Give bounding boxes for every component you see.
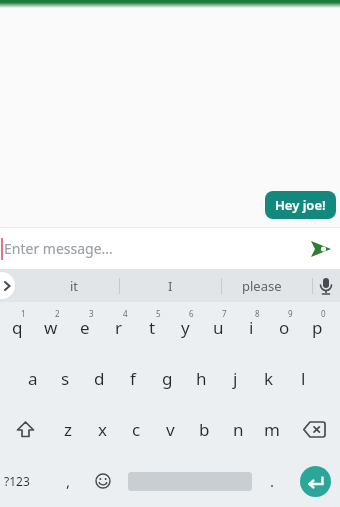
staticText: 1 xyxy=(21,308,26,319)
staticText: y xyxy=(181,316,190,339)
staticText: l xyxy=(301,367,306,390)
staticText: q xyxy=(12,316,23,339)
staticText: 9 xyxy=(288,308,293,319)
button[interactable]: x xyxy=(85,404,119,455)
staticText: v xyxy=(166,418,175,441)
button[interactable]: a xyxy=(16,353,49,404)
button[interactable]: y xyxy=(169,302,202,353)
button[interactable] xyxy=(300,466,331,497)
staticText: ?123 xyxy=(4,473,30,489)
staticText: u xyxy=(213,316,224,339)
staticText: p xyxy=(312,316,323,339)
staticText: i xyxy=(249,316,254,339)
button[interactable] xyxy=(0,272,15,299)
button[interactable] xyxy=(95,473,111,489)
staticText: 5 xyxy=(156,308,161,319)
button[interactable]: w xyxy=(34,302,68,353)
staticText: n xyxy=(233,418,244,441)
button[interactable]: m xyxy=(255,404,289,455)
staticText: 6 xyxy=(189,308,194,319)
button[interactable]: k xyxy=(252,353,286,404)
button[interactable]: t xyxy=(136,302,169,353)
staticText: 4 xyxy=(123,308,128,319)
staticText: o xyxy=(279,316,290,339)
staticText: r xyxy=(115,316,123,339)
button[interactable]: r xyxy=(102,302,136,353)
staticText: a xyxy=(28,367,38,390)
staticText: j xyxy=(233,367,238,390)
button[interactable]: I xyxy=(150,277,190,295)
staticText: h xyxy=(196,367,207,390)
button[interactable] xyxy=(0,404,51,455)
staticText: g xyxy=(162,367,173,390)
button[interactable]: z xyxy=(51,404,85,455)
staticText: please xyxy=(242,277,282,295)
staticText: 0 xyxy=(321,308,326,319)
staticText: c xyxy=(132,418,141,441)
staticText: m xyxy=(264,418,280,441)
button[interactable]: i xyxy=(235,302,268,353)
button[interactable]: v xyxy=(153,404,187,455)
button[interactable]: Hey joe! xyxy=(265,191,336,219)
staticText: , xyxy=(66,471,71,491)
staticText: Hey joe! xyxy=(275,196,326,214)
staticText: d xyxy=(94,367,105,390)
staticText: t xyxy=(149,316,156,339)
button[interactable] xyxy=(289,404,340,455)
button[interactable]: p xyxy=(301,302,334,353)
button[interactable]: please xyxy=(232,277,292,295)
staticText: Enter message... xyxy=(4,239,113,258)
staticText: it xyxy=(70,277,79,295)
staticText: k xyxy=(264,367,274,390)
button[interactable] xyxy=(318,277,334,295)
button[interactable]: g xyxy=(150,353,184,404)
staticText: 3 xyxy=(89,308,94,319)
button[interactable]: e xyxy=(68,302,102,353)
staticText: 7 xyxy=(222,308,227,319)
staticText: e xyxy=(80,316,90,339)
button[interactable]: q xyxy=(0,302,34,353)
staticText: z xyxy=(64,418,72,441)
button[interactable]: d xyxy=(82,353,116,404)
button[interactable]: Enter message... xyxy=(0,228,340,269)
staticText: I xyxy=(168,277,173,295)
button[interactable]: b xyxy=(187,404,221,455)
button[interactable]: j xyxy=(218,353,252,404)
button[interactable]: n xyxy=(221,404,255,455)
staticText: s xyxy=(61,367,70,390)
button[interactable]: o xyxy=(268,302,301,353)
staticText: b xyxy=(199,418,210,441)
staticText: 8 xyxy=(255,308,260,319)
staticText: . xyxy=(270,471,275,491)
button[interactable]: c xyxy=(119,404,153,455)
button[interactable]: h xyxy=(184,353,218,404)
staticText: x xyxy=(98,418,107,441)
staticText: f xyxy=(130,367,136,390)
staticText: 2 xyxy=(55,308,60,319)
staticText: w xyxy=(44,316,58,339)
button[interactable]: ?123 xyxy=(0,473,33,489)
button[interactable]: s xyxy=(49,353,82,404)
button[interactable]: f xyxy=(116,353,150,404)
button[interactable]: it xyxy=(54,277,94,295)
button[interactable]: l xyxy=(286,353,320,404)
button[interactable]: u xyxy=(202,302,235,353)
